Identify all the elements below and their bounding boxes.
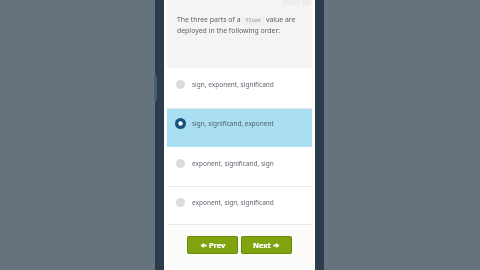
button[interactable]: exponent, sign, significand (167, 187, 312, 225)
staticText: exponent, significand, sign (192, 159, 274, 168)
button[interactable]: sign, exponent, significand (167, 68, 312, 109)
button[interactable]: sign, significand, exponent (167, 109, 312, 147)
staticText: exponent, sign, significand (192, 198, 274, 207)
staticText: Next (253, 240, 271, 250)
button[interactable]: Next (242, 237, 291, 253)
staticText: sign, exponent, significand (192, 80, 274, 89)
button[interactable]: exponent, significand, sign (167, 147, 312, 187)
button[interactable]: Prev (188, 237, 237, 253)
staticText: sign, significand, exponent (192, 119, 274, 128)
staticText: The three parts of a float value are dep… (177, 15, 308, 35)
staticText: Prev (209, 240, 226, 250)
